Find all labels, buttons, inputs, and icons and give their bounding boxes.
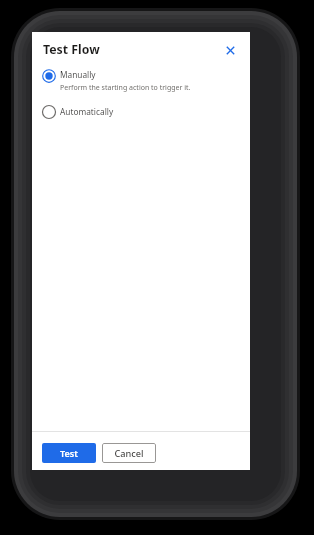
staticText: Manually: [60, 69, 96, 80]
button[interactable]: Automatically: [40, 103, 240, 125]
staticText: Perform the starting action to trigger i…: [60, 83, 191, 93]
staticText: Test: [60, 447, 78, 459]
staticText: Test Flow: [43, 41, 100, 58]
staticText: Cancel: [114, 447, 144, 460]
button[interactable]: Manually: [40, 68, 240, 94]
button[interactable]: Cancel: [102, 443, 156, 463]
button[interactable]: [222, 42, 239, 59]
staticText: Automatically: [60, 106, 114, 117]
button[interactable]: Test: [42, 443, 96, 463]
